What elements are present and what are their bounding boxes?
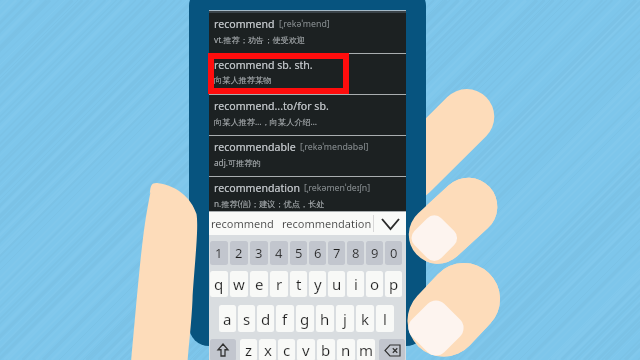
- button[interactable]: c: [278, 339, 295, 360]
- button[interactable]: 7: [328, 241, 345, 265]
- staticText: i: [354, 274, 358, 294]
- staticText: 7: [333, 244, 341, 262]
- staticText: d: [261, 309, 271, 329]
- button[interactable]: 2: [230, 241, 248, 265]
- staticText: u: [332, 274, 342, 294]
- staticText: 向某人推荐某物: [214, 75, 272, 85]
- button[interactable]: recommend: [209, 212, 282, 235]
- staticText: recommendation: [282, 216, 372, 231]
- button[interactable]: u: [328, 271, 345, 297]
- button[interactable]: 9: [366, 241, 383, 265]
- staticText: z: [245, 340, 253, 360]
- button[interactable]: w: [230, 271, 248, 297]
- staticText: recommend sb. sth.: [214, 58, 313, 72]
- button[interactable]: z: [240, 339, 257, 360]
- staticText: h: [320, 309, 330, 329]
- staticText: 1: [215, 244, 223, 262]
- button[interactable]: Backspace: [379, 339, 405, 360]
- staticText: g: [300, 309, 310, 329]
- staticText: y: [314, 274, 322, 294]
- staticText: 5: [295, 244, 303, 262]
- staticText: 4: [275, 244, 283, 262]
- staticText: [ˌrekəˈmendəbəl]: [300, 141, 369, 153]
- button[interactable]: 8: [347, 241, 364, 265]
- staticText: recommendable: [214, 140, 296, 154]
- staticText: recommend: [211, 216, 274, 231]
- button[interactable]: s: [238, 305, 255, 332]
- button[interactable]: Shift: [210, 339, 236, 360]
- staticText: s: [243, 309, 251, 329]
- staticText: [ˌrekəmenˈdeɪʃn]: [304, 182, 371, 194]
- button[interactable]: 3: [250, 241, 268, 265]
- staticText: 0: [390, 244, 398, 262]
- staticText: 6: [314, 244, 322, 262]
- button[interactable]: 1: [210, 241, 228, 265]
- button[interactable]: m: [357, 339, 375, 360]
- staticText: q: [214, 274, 224, 294]
- staticText: o: [370, 274, 380, 294]
- staticText: vt.推荐；劝告；使受欢迎: [214, 34, 306, 45]
- button[interactable]: 4: [270, 241, 288, 265]
- button[interactable]: Expand suggestions: [374, 212, 406, 235]
- staticText: 9: [371, 244, 379, 262]
- button[interactable]: v: [297, 339, 315, 360]
- staticText: a: [223, 309, 232, 329]
- staticText: recommend...to/for sb.: [214, 99, 329, 113]
- button[interactable]: recommend: [209, 13, 406, 54]
- staticText: 8: [352, 244, 360, 262]
- button[interactable]: 5: [290, 241, 307, 265]
- button[interactable]: t: [290, 271, 307, 297]
- button[interactable]: r: [270, 271, 288, 297]
- staticText: b: [321, 340, 331, 360]
- button[interactable]: f: [276, 305, 294, 332]
- staticText: v: [302, 340, 310, 360]
- button[interactable]: 6: [309, 241, 326, 265]
- button[interactable]: recommendable: [209, 136, 406, 177]
- button[interactable]: h: [316, 305, 334, 332]
- staticText: f: [282, 309, 288, 329]
- button[interactable]: g: [296, 305, 314, 332]
- button[interactable]: d: [257, 305, 274, 332]
- staticText: 3: [255, 244, 263, 262]
- button[interactable]: l: [376, 305, 394, 332]
- staticText: j: [343, 309, 347, 329]
- button[interactable]: k: [356, 305, 374, 332]
- staticText: c: [283, 340, 291, 360]
- staticText: l: [383, 309, 387, 329]
- button[interactable]: x: [259, 339, 276, 360]
- staticText: 向某人推荐…，向某人介绍…: [214, 116, 318, 127]
- button[interactable]: q: [210, 271, 228, 297]
- button[interactable]: j: [336, 305, 354, 332]
- staticText: recommendation: [214, 181, 300, 195]
- staticText: 2: [235, 244, 243, 262]
- staticText: n.推荐(信)；建议；优点，长处: [214, 198, 325, 209]
- button[interactable]: o: [366, 271, 383, 297]
- staticText: adj.可推荐的: [214, 157, 261, 168]
- staticText: t: [296, 274, 302, 294]
- staticText: e: [255, 274, 264, 294]
- staticText: m: [359, 340, 374, 360]
- button[interactable]: y: [309, 271, 326, 297]
- button[interactable]: e: [250, 271, 268, 297]
- button[interactable]: n: [337, 339, 355, 360]
- staticText: r: [276, 274, 283, 294]
- staticText: p: [389, 274, 399, 294]
- staticText: [ˌrekəˈmend]: [279, 18, 330, 30]
- button[interactable]: recommendation: [209, 177, 406, 212]
- staticText: recommend: [214, 17, 275, 31]
- button[interactable]: recommend sb. sth.: [209, 54, 406, 95]
- button[interactable]: recommendation: [282, 212, 373, 235]
- button[interactable]: 0: [385, 241, 402, 265]
- button[interactable]: p: [385, 271, 402, 297]
- staticText: x: [264, 340, 272, 360]
- staticText: n: [341, 340, 351, 360]
- staticText: k: [361, 309, 370, 329]
- button[interactable]: b: [317, 339, 335, 360]
- button[interactable]: recommend...to/for sb.: [209, 95, 406, 136]
- button[interactable]: i: [347, 271, 364, 297]
- button[interactable]: a: [219, 305, 236, 332]
- staticText: w: [233, 274, 245, 294]
